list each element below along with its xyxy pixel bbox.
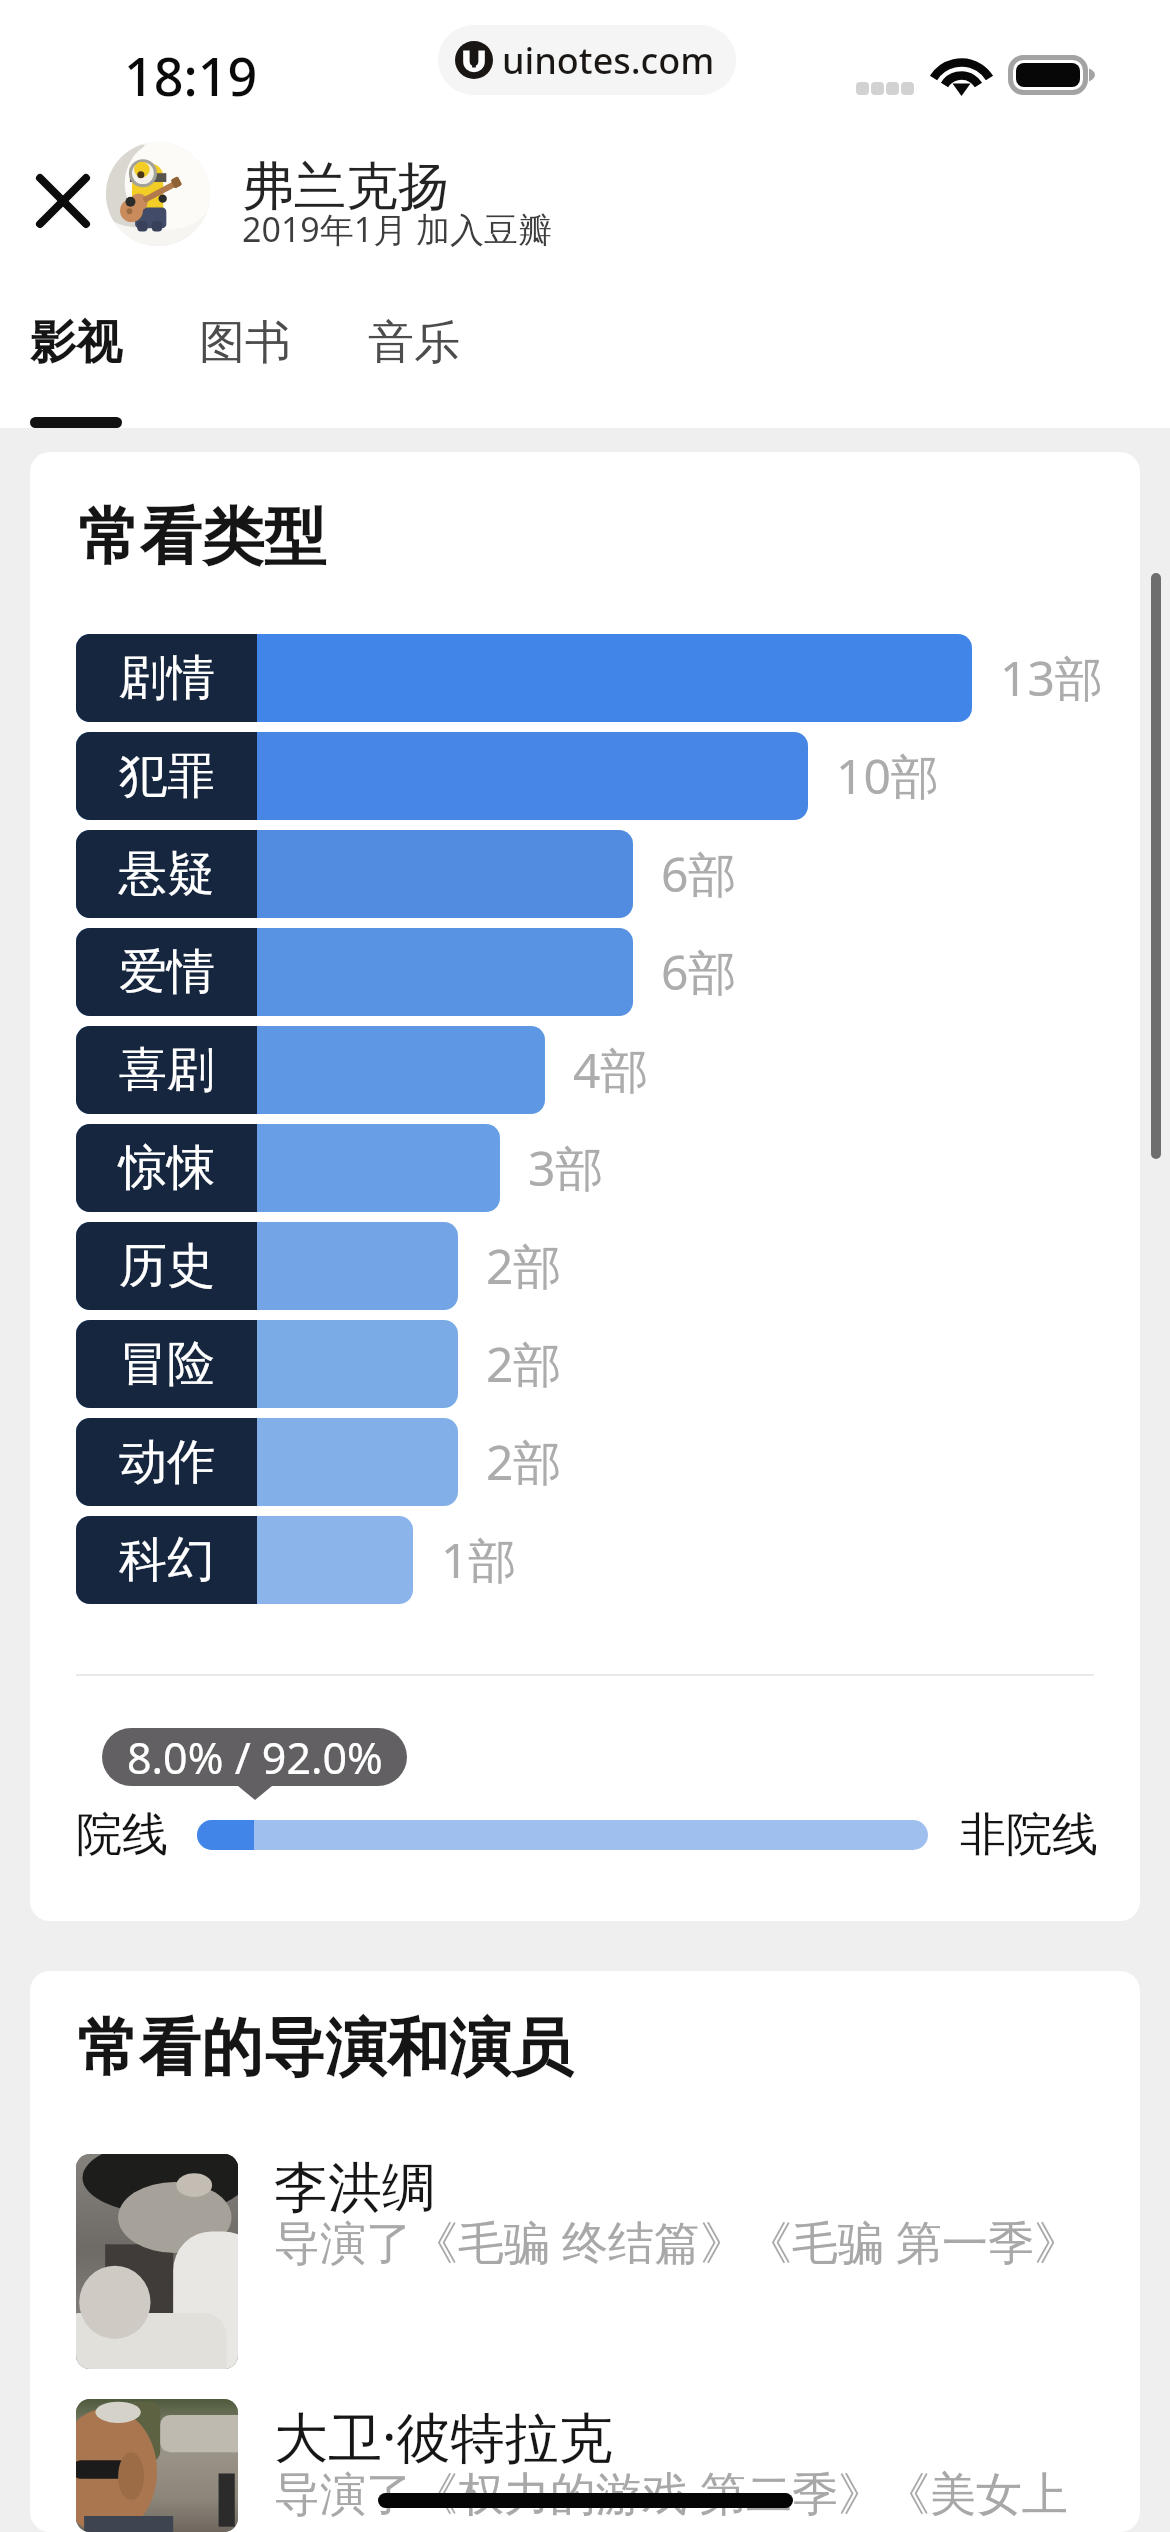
staticText: 2019年1月 加入豆瓣 [242, 206, 553, 252]
staticText: 10部 [836, 743, 939, 809]
staticText: 4部 [573, 1037, 649, 1103]
staticText: 冒险 [119, 1334, 215, 1394]
staticText: 大卫·彼特拉克 [274, 2399, 613, 2473]
button[interactable]: Close [26, 164, 100, 238]
staticText: 6部 [661, 939, 737, 1005]
staticText: 常看的导演和演员 [77, 2009, 573, 2087]
staticText: 弗兰克扬 [242, 154, 450, 220]
staticText: uinotes.com [502, 36, 715, 85]
staticText: 科幻 [119, 1530, 215, 1590]
staticText: 图书 [199, 314, 291, 372]
staticText: 惊悚 [119, 1138, 215, 1198]
staticText: 导演了《权力的游戏 第二季》《美女上 错身 第一季》 [274, 2461, 1068, 2520]
button[interactable]: 图书 [199, 314, 291, 428]
button[interactable]: 影视 [30, 314, 122, 428]
staticText: 2部 [486, 1331, 562, 1397]
staticText: 动作 [119, 1432, 215, 1492]
staticText: 喜剧 [119, 1040, 215, 1100]
staticText: 2部 [486, 1429, 562, 1495]
staticText: 2部 [486, 1233, 562, 1299]
staticText: 1部 [441, 1527, 517, 1593]
staticText: 音乐 [368, 314, 460, 372]
staticText: 18:19 [124, 40, 258, 111]
staticText: 院线 [76, 1806, 168, 1864]
staticText: 3部 [528, 1135, 604, 1201]
staticText: 剧情 [119, 648, 215, 708]
staticText: 常看类型 [78, 498, 326, 576]
staticText: 犯罪 [119, 746, 215, 806]
button[interactable]: 音乐 [368, 314, 460, 428]
staticText: 导演了《毛骗 终结篇》《毛骗 第一季》 [274, 2210, 1080, 2273]
button[interactable]: 大卫·彼特拉克 [76, 2399, 1120, 2532]
staticText: 13部 [1000, 645, 1103, 711]
staticText: 影视 [30, 314, 122, 372]
staticText: 悬疑 [119, 844, 215, 904]
button[interactable]: 李洪绸 [76, 2154, 1120, 2369]
staticText: 8.0% / 92.0% [127, 1728, 383, 1786]
staticText: 历史 [119, 1236, 215, 1296]
staticText: 6部 [661, 841, 737, 907]
staticText: 李洪绸 [274, 2154, 436, 2222]
staticText: 非院线 [960, 1806, 1098, 1864]
staticText: 爱情 [119, 942, 215, 1002]
